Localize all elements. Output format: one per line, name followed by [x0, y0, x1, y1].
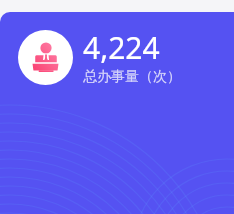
staticText: 4,224 [83, 27, 160, 68]
button[interactable]: 4,224 [0, 12, 234, 214]
staticText: 总办事量（次） [83, 68, 181, 86]
